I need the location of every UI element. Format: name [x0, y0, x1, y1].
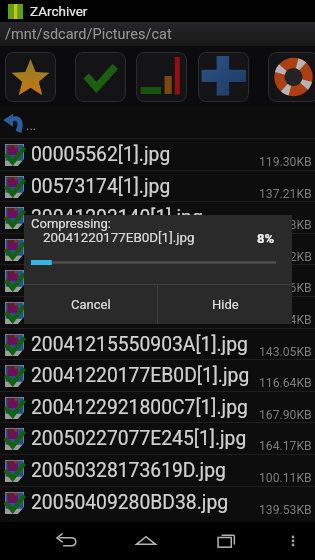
button[interactable]: 00005562[1].jpg: [0, 139, 315, 170]
staticText: Hide: [212, 297, 239, 312]
staticText: 00005562[1].jpg: [31, 143, 255, 166]
button[interactable]: 00573174[1].jpg: [0, 171, 315, 202]
staticText: 20050328173619D.jpg: [31, 459, 255, 482]
button[interactable]: Hide: [158, 285, 292, 324]
staticText: 122.36KB: [259, 281, 312, 295]
staticText: 131.84KB: [259, 313, 312, 327]
staticText: 20041212230F4[1].jpg: [31, 301, 255, 324]
button[interactable]: Favourites: [5, 52, 56, 102]
button[interactable]: New: [198, 52, 249, 102]
button[interactable]: Statistics: [136, 52, 187, 102]
button[interactable]: 20041220177EB0D[1].jpg: [0, 360, 315, 391]
staticText: 20041215550903A[1].jpg: [31, 333, 255, 356]
staticText: /mnt/sdcard/Pictures/cat: [5, 26, 172, 43]
button[interactable]: 20041210012A[1].jpg: [0, 265, 315, 296]
button[interactable]: Home: [124, 522, 168, 560]
staticText: 2004122921800C7[1].jpg: [31, 396, 255, 419]
button[interactable]: Help: [268, 52, 315, 102]
staticText: 143.05KB: [259, 345, 312, 359]
staticText: 20041203140[1].jpg: [31, 206, 255, 229]
staticText: ...: [26, 118, 37, 133]
staticText: 164.17KB: [259, 439, 312, 453]
staticText: Compressing:: [31, 216, 111, 231]
staticText: 20041220177EB0D[1].jpg: [43, 230, 195, 246]
button[interactable]: Select all: [75, 52, 126, 102]
staticText: 20041205547DD[1].jpg: [31, 238, 262, 261]
staticText: Cancel: [71, 297, 111, 312]
staticText: 8%: [257, 231, 275, 246]
staticText: ZArchiver: [30, 3, 88, 19]
staticText: 98.42KB: [266, 250, 312, 264]
staticText: 119.30KB: [259, 155, 312, 169]
button[interactable]: 20041203140[1].jpg: [0, 202, 315, 233]
staticText: 167.90KB: [259, 408, 312, 422]
staticText: 139.53KB: [259, 503, 312, 517]
button[interactable]: 20050328173619D.jpg: [0, 455, 315, 486]
staticText: 105.18KB: [259, 218, 312, 232]
button[interactable]: 2004122921800C7[1].jpg: [0, 392, 315, 423]
staticText: 20050409280BD38.jpg: [31, 491, 255, 514]
button[interactable]: ...: [0, 106, 315, 138]
staticText: 20050227077E245[1].jpg: [31, 427, 255, 450]
button[interactable]: 20050227077E245[1].jpg: [0, 423, 315, 454]
staticText: 20041220177EB0D[1].jpg: [31, 364, 255, 387]
button[interactable]: Back: [44, 522, 88, 560]
button[interactable]: Recent apps: [204, 522, 248, 560]
button[interactable]: 20041205547DD[1].jpg: [0, 234, 315, 265]
button[interactable]: More options: [277, 525, 309, 557]
button[interactable]: 20041215550903A[1].jpg: [0, 329, 315, 360]
button[interactable]: Cancel: [24, 285, 157, 324]
staticText: 20041210012A[1].jpg: [31, 269, 255, 292]
staticText: 00573174[1].jpg: [31, 175, 255, 198]
staticText: 100.11KB: [259, 471, 312, 485]
staticText: 116.64KB: [259, 376, 312, 390]
button[interactable]: 20050409280BD38.jpg: [0, 487, 315, 518]
button[interactable]: 20041212230F4[1].jpg: [0, 297, 315, 328]
staticText: 137.21KB: [259, 187, 312, 201]
